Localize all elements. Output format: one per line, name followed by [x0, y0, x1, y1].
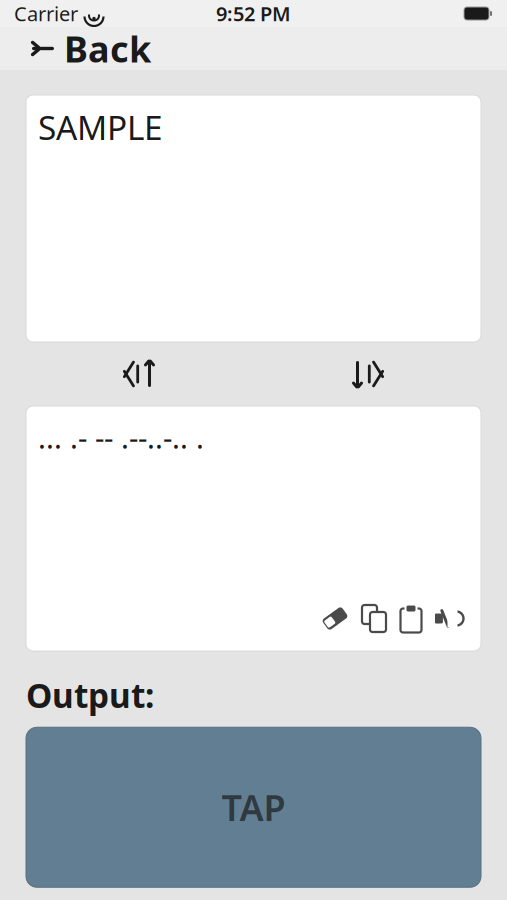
button[interactable]: Clear: [315, 599, 355, 637]
staticText: ... .- -- .--..-.. .: [38, 418, 204, 457]
button[interactable]: Copy: [355, 598, 393, 638]
button[interactable]: TAP: [26, 727, 481, 887]
button[interactable]: Back: [22, 21, 159, 76]
button[interactable]: Paste: [393, 598, 429, 639]
staticText: Output:: [26, 673, 154, 717]
staticText: 9:52 PM: [216, 0, 291, 27]
staticText: Carrier: [14, 0, 78, 27]
staticText: Back: [64, 25, 151, 72]
button[interactable]: Convert Morse to text: [90, 349, 188, 399]
staticText: SAMPLE: [38, 105, 163, 149]
button[interactable]: Play sound: [429, 600, 469, 636]
staticText: TAP: [221, 783, 285, 831]
button[interactable]: Convert text to Morse: [319, 349, 417, 399]
